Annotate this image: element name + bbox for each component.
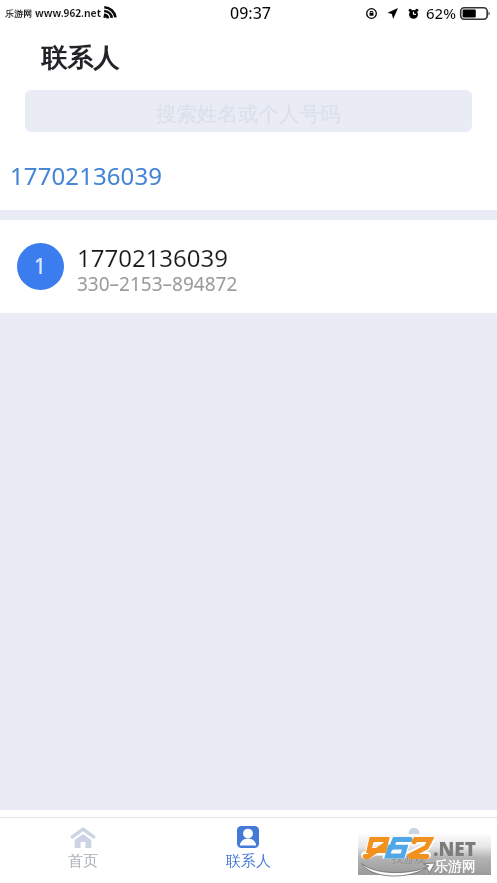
staticText: 搜索姓名或个人号码	[156, 101, 341, 127]
staticText: 乐游网	[5, 8, 32, 19]
staticText: 17702136039	[10, 159, 163, 192]
staticText: 330–2153–894872	[77, 271, 238, 297]
staticText: 乐游网	[434, 858, 476, 876]
staticText: .NET	[433, 836, 476, 862]
staticText: 联系人	[41, 42, 119, 75]
button[interactable]: 首页	[0, 818, 165, 883]
staticText: www.962.net	[35, 6, 102, 20]
staticText: 找游戏	[392, 852, 425, 866]
staticText: 我的	[399, 852, 429, 871]
staticText: 联系人	[226, 852, 271, 871]
button[interactable]: 我的	[331, 818, 497, 883]
staticText: 首页	[68, 852, 98, 871]
button[interactable]: 联系人	[165, 818, 331, 883]
staticText: 09:37	[230, 2, 271, 24]
button[interactable]: 1	[0, 220, 497, 313]
staticText: 62%	[426, 3, 456, 23]
staticText: 17702136039	[77, 241, 229, 274]
staticText: 1	[34, 252, 47, 281]
